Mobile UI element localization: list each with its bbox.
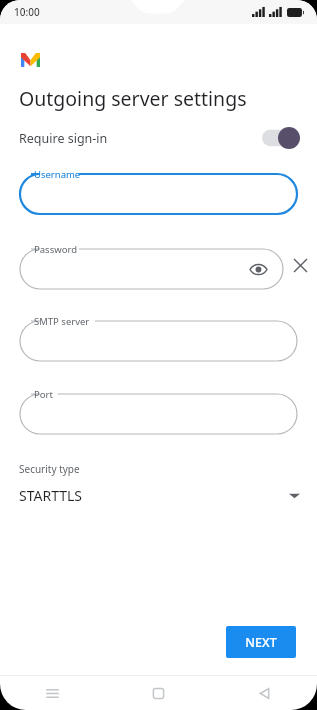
staticText: SMTP server: [34, 315, 90, 328]
staticText: Username: [34, 168, 81, 181]
button[interactable]: Port: [20, 386, 297, 434]
button[interactable]: Require sign-in: [0, 123, 317, 153]
button[interactable]: Clear: [283, 241, 317, 289]
button[interactable]: NEXT: [226, 626, 296, 658]
button[interactable]: SMTP server: [20, 313, 297, 361]
staticText: Outgoing server settings: [19, 85, 247, 112]
button[interactable]: Back: [211, 676, 317, 710]
button[interactable]: Show password: [247, 258, 269, 280]
button[interactable]: Security type: [0, 462, 317, 505]
button[interactable]: Require sign-in toggle: [262, 127, 300, 149]
staticText: Security type: [19, 462, 80, 476]
staticText: NEXT: [245, 634, 277, 651]
staticText: STARTTLS: [19, 486, 83, 505]
staticText: 10:00: [14, 5, 40, 19]
staticText: Password: [34, 243, 77, 256]
staticText: Require sign-in: [19, 130, 108, 147]
button[interactable]: Home: [105, 676, 211, 710]
button[interactable]: Recents: [0, 676, 105, 710]
button[interactable]: Password: [20, 241, 283, 289]
button[interactable]: Username: [20, 166, 297, 214]
staticText: Port: [34, 388, 53, 401]
